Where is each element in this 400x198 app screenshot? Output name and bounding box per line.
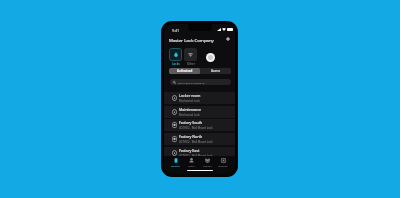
staticText: 4GTHD2 - Wall Mount Lock	[179, 140, 213, 144]
button[interactable]: Devices	[168, 156, 183, 168]
staticText: 4GTHD2 - Wall Mount Lock	[179, 126, 213, 130]
staticText: Locks	[172, 62, 180, 66]
button[interactable]: Find Name or Device ID	[170, 79, 231, 85]
button[interactable]: Locker room	[164, 92, 235, 104]
button[interactable]: Settings	[215, 156, 231, 168]
button[interactable]: Groups	[199, 156, 215, 168]
staticText: Maintenance	[179, 107, 201, 112]
staticText: Other	[187, 62, 195, 66]
staticText: Users	[188, 164, 195, 167]
button[interactable]: Authorized	[169, 68, 200, 74]
button[interactable]: Other	[184, 48, 197, 66]
button[interactable]: Access	[200, 68, 231, 74]
button[interactable]: Maintenance	[164, 106, 235, 118]
button[interactable]: Users	[183, 156, 199, 168]
staticText: Authorized	[177, 69, 193, 73]
button[interactable]: Factory East	[164, 147, 235, 159]
button[interactable]: Factory South	[164, 119, 235, 131]
staticText: Settings	[218, 164, 228, 167]
button[interactable]: Locks	[169, 48, 182, 66]
button[interactable]: Factory North	[164, 133, 235, 145]
staticText: 9:41	[172, 28, 180, 33]
staticText: Factory East	[179, 148, 200, 153]
staticText: Find Name or Device ID	[178, 81, 205, 84]
staticText: Mechanical Lock	[179, 113, 200, 117]
staticText: Locker room	[179, 93, 201, 98]
staticText: 4GTHD2 - Wall Mount Lock	[179, 154, 213, 158]
staticText: Mechanical Lock	[179, 99, 200, 103]
staticText: Factory North	[179, 134, 203, 139]
staticText: Factory South	[179, 120, 203, 125]
button[interactable]: Add device	[223, 34, 233, 44]
staticText: Access	[211, 69, 221, 73]
staticText: Groups	[203, 164, 212, 167]
staticText: Devices	[171, 164, 180, 167]
staticText: Master Lock Company	[169, 37, 214, 43]
